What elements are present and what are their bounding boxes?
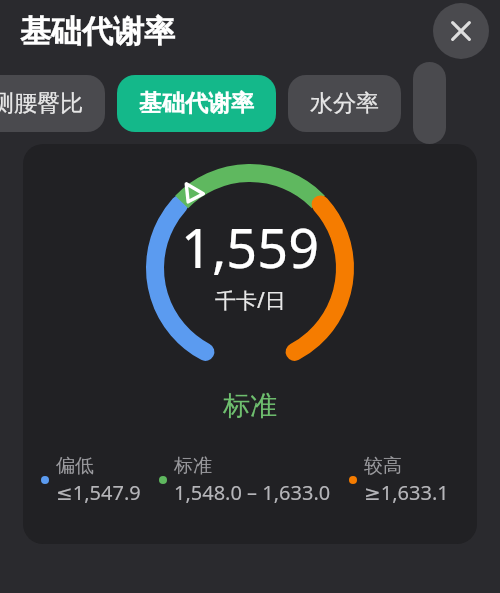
staticText: ≥1,633.1 xyxy=(364,479,449,506)
button[interactable]: 蛋白质 xyxy=(413,62,446,144)
staticText: 1,548.0 – 1,633.0 xyxy=(174,479,331,506)
staticText: 标准 xyxy=(174,454,212,478)
staticText: 水分率 xyxy=(310,89,379,118)
button[interactable]: 水分率 xyxy=(288,75,401,132)
staticText: 基础代谢率 xyxy=(139,89,254,118)
staticText: 较高 xyxy=(364,454,402,478)
button[interactable]: 准测腰臀比 xyxy=(0,75,105,132)
staticText: 偏低 xyxy=(56,454,94,478)
staticText: 基础代谢率 xyxy=(20,12,175,51)
button[interactable]: Close xyxy=(433,3,489,59)
staticText: 1,559 xyxy=(181,210,320,284)
button[interactable]: 基础代谢率 xyxy=(117,75,276,132)
staticText: 千卡/日 xyxy=(215,286,286,315)
staticText: ≤1,547.9 xyxy=(56,479,141,506)
staticText: 标准 xyxy=(223,389,277,423)
staticText: 准测腰臀比 xyxy=(0,89,83,118)
